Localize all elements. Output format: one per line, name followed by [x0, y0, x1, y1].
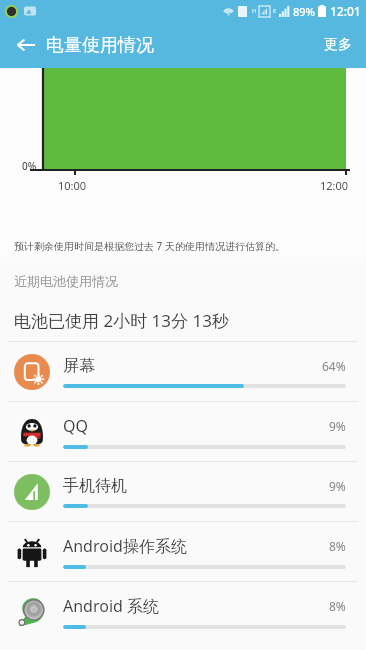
- button[interactable]: 手机待机: [0, 462, 366, 521]
- staticText: 8%: [329, 538, 346, 554]
- staticText: 64%: [322, 358, 346, 374]
- staticText: 8%: [329, 598, 346, 614]
- button[interactable]: Android 系统: [0, 582, 366, 641]
- staticText: Android操作系统: [63, 535, 329, 557]
- staticText: 9%: [329, 418, 346, 434]
- staticText: 更多: [324, 36, 352, 54]
- staticText: 手机待机: [63, 476, 329, 496]
- staticText: 9%: [329, 478, 346, 494]
- staticText: QQ: [63, 415, 329, 437]
- staticText: 预计剩余使用时间是根据您过去 7 天的使用情况进行估算的。: [14, 239, 285, 253]
- button[interactable]: Android操作系统: [0, 522, 366, 581]
- staticText: 近期电池使用情况: [14, 273, 118, 289]
- staticText: 89%: [293, 4, 315, 19]
- button[interactable]: Back: [8, 27, 44, 63]
- staticText: 12:01: [330, 3, 361, 19]
- button[interactable]: 屏幕: [0, 342, 366, 401]
- button[interactable]: 更多: [310, 26, 366, 64]
- staticText: 电量使用情况: [46, 34, 154, 57]
- staticText: 12:00: [320, 178, 349, 193]
- button[interactable]: QQ: [0, 402, 366, 461]
- staticText: H: [252, 7, 257, 15]
- staticText: E: [273, 7, 277, 15]
- staticText: 0%: [22, 159, 37, 173]
- staticText: Android 系统: [63, 595, 329, 617]
- staticText: 10:00: [58, 178, 87, 193]
- staticText: 电池已使用 2小时 13分 13秒: [14, 309, 229, 332]
- staticText: 屏幕: [63, 356, 322, 376]
